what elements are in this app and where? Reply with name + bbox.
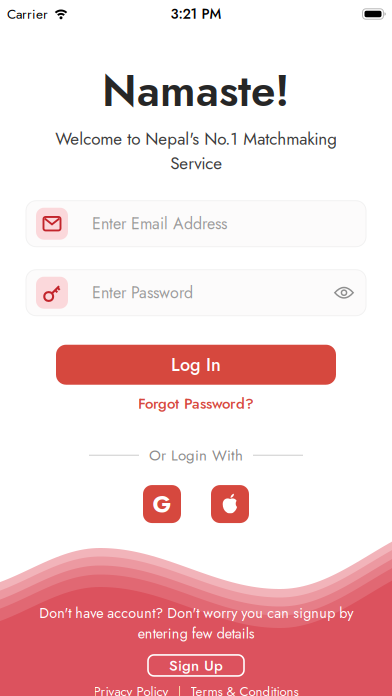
staticText: Privacy Policy bbox=[93, 682, 168, 696]
staticText: Enter Password bbox=[92, 281, 193, 304]
button[interactable]: Log In bbox=[56, 345, 336, 385]
staticText: Log In bbox=[171, 352, 221, 378]
staticText: Forgot Password? bbox=[138, 393, 254, 414]
button[interactable]: Log in with Google bbox=[143, 485, 181, 523]
button[interactable]: Sign Up bbox=[148, 655, 244, 676]
staticText: G bbox=[152, 487, 171, 521]
staticText: Or Login With bbox=[149, 444, 243, 466]
staticText: Enter Email Address bbox=[92, 212, 227, 235]
staticText: Namaste! bbox=[102, 59, 290, 123]
staticText: Carrier bbox=[7, 4, 48, 24]
button[interactable]: Terms & Conditions bbox=[190, 682, 298, 696]
button[interactable]: Log in with Apple bbox=[211, 485, 249, 523]
staticText: | bbox=[177, 682, 181, 696]
staticText: Terms & Conditions bbox=[190, 682, 298, 696]
staticText: 3:21 PM bbox=[170, 4, 221, 24]
button[interactable]: Privacy Policy bbox=[93, 682, 168, 696]
staticText: Sign Up bbox=[169, 655, 223, 676]
button[interactable]: Show Password bbox=[334, 287, 354, 299]
staticText: Welcome to Nepal's No.1 Matchmaking Serv… bbox=[55, 127, 337, 176]
button[interactable]: Forgot Password? bbox=[138, 393, 254, 414]
staticText: Don't have account? Don't worry you can … bbox=[39, 603, 353, 644]
